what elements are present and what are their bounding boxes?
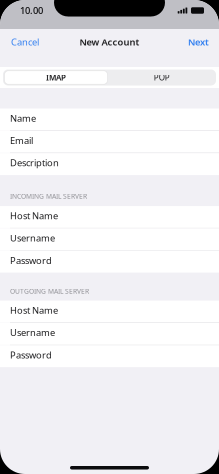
staticText: OUTGOING MAIL SERVER: [10, 287, 89, 296]
staticText: Email: [10, 134, 33, 147]
button[interactable]: Host Name: [0, 206, 219, 228]
staticText: Password: [10, 349, 52, 361]
button[interactable]: Description: [0, 153, 219, 175]
button[interactable]: Username: [0, 323, 219, 345]
staticText: 10.00: [20, 4, 43, 17]
staticText: Name: [10, 112, 36, 124]
button[interactable]: Host Name: [0, 301, 219, 322]
button[interactable]: Username: [0, 228, 219, 250]
staticText: Next: [188, 36, 209, 48]
staticText: IMAP: [46, 72, 66, 83]
staticText: INCOMING MAIL SERVER: [10, 192, 87, 200]
staticText: POP: [154, 72, 170, 83]
staticText: Cancel: [11, 36, 39, 48]
button[interactable]: POP: [107, 69, 216, 85]
staticText: Password: [10, 254, 52, 266]
staticText: Host Name: [10, 209, 58, 222]
staticText: Host Name: [10, 304, 58, 316]
button[interactable]: Next: [178, 29, 219, 55]
staticText: Username: [10, 326, 55, 339]
button[interactable]: Password: [0, 345, 219, 367]
button[interactable]: Password: [0, 251, 219, 273]
staticText: New Account: [79, 36, 139, 48]
button[interactable]: Email: [0, 131, 219, 153]
staticText: Username: [10, 232, 55, 244]
button[interactable]: Name: [0, 108, 219, 130]
staticText: Description: [10, 156, 59, 169]
button[interactable]: Cancel: [0, 29, 50, 55]
button[interactable]: IMAP: [3, 71, 107, 84]
